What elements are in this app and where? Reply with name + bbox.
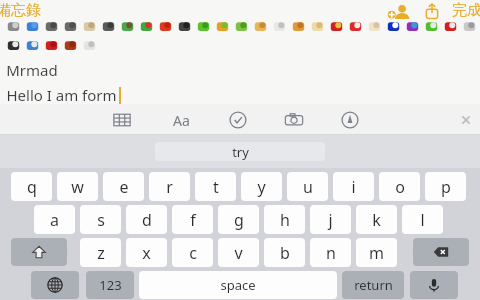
staticText: p <box>441 176 451 198</box>
button[interactable]: y <box>241 172 282 201</box>
button[interactable]: Markup <box>338 108 362 132</box>
button[interactable]: r <box>149 172 190 201</box>
staticText: m <box>369 242 384 264</box>
button[interactable]: e <box>103 172 144 201</box>
staticText: l <box>420 209 425 231</box>
staticText: z <box>97 242 105 264</box>
button[interactable]: z <box>80 238 121 267</box>
staticText: n <box>326 242 336 264</box>
button[interactable]: Camera <box>282 108 306 132</box>
button[interactable]: 123 <box>86 271 134 299</box>
button[interactable]: try <box>155 142 325 161</box>
staticText: x <box>142 242 151 264</box>
button[interactable]: Table <box>110 108 134 132</box>
staticText: 備忘錄 <box>0 1 41 20</box>
staticText: k <box>372 209 381 231</box>
button[interactable]: c <box>172 238 213 267</box>
button[interactable]: Keyboard language <box>31 271 79 299</box>
button[interactable]: Backspace <box>413 238 469 266</box>
staticText: space <box>220 276 256 294</box>
button[interactable]: f <box>172 205 213 234</box>
staticText: y <box>257 176 266 198</box>
button[interactable]: Checklist <box>226 108 250 132</box>
staticText: c <box>189 242 197 264</box>
button[interactable]: i <box>333 172 374 201</box>
button[interactable]: a <box>34 205 75 234</box>
staticText: b <box>280 242 290 264</box>
button[interactable]: Shift <box>11 238 67 266</box>
button[interactable]: o <box>379 172 420 201</box>
button[interactable]: t <box>195 172 236 201</box>
staticText: 123 <box>99 276 122 294</box>
button[interactable]: g <box>218 205 259 234</box>
button[interactable]: j <box>310 205 351 234</box>
button[interactable]: u <box>287 172 328 201</box>
staticText: d <box>142 209 152 231</box>
button[interactable]: q <box>11 172 52 201</box>
staticText: h <box>280 209 290 231</box>
button[interactable]: h <box>264 205 305 234</box>
staticText: return <box>354 276 393 294</box>
staticText: q <box>27 176 37 198</box>
staticText: Hello I am form <box>6 85 117 105</box>
button[interactable]: Aa <box>168 109 194 131</box>
button[interactable]: space <box>139 271 337 299</box>
button[interactable]: return <box>342 271 404 299</box>
staticText: s <box>97 209 105 231</box>
button[interactable]: Share <box>422 2 442 20</box>
button[interactable]: x <box>126 238 167 267</box>
button[interactable]: p <box>425 172 466 201</box>
staticText: try <box>232 143 249 161</box>
button[interactable]: l <box>402 205 443 234</box>
button[interactable]: s <box>80 205 121 234</box>
button[interactable]: w <box>57 172 98 201</box>
staticText: r <box>166 176 173 198</box>
staticText: Aa <box>173 111 190 130</box>
button[interactable]: Dictation <box>410 271 458 299</box>
staticText: v <box>234 242 243 264</box>
button[interactable]: Close <box>456 110 476 130</box>
staticText: t <box>213 176 219 198</box>
button[interactable]: Add people <box>386 2 412 20</box>
staticText: 完成 <box>452 1 480 20</box>
staticText: u <box>303 176 313 198</box>
staticText: Mrmad <box>6 60 58 80</box>
staticText: o <box>395 176 405 198</box>
button[interactable]: b <box>264 238 305 267</box>
button[interactable]: v <box>218 238 259 267</box>
button[interactable]: m <box>356 238 397 267</box>
button[interactable]: 完成 <box>450 1 480 20</box>
button[interactable]: k <box>356 205 397 234</box>
button[interactable]: d <box>126 205 167 234</box>
staticText: f <box>190 209 196 231</box>
button[interactable]: n <box>310 238 351 267</box>
staticText: g <box>234 209 244 231</box>
staticText: e <box>119 176 129 198</box>
staticText: a <box>50 209 59 231</box>
staticText: i <box>351 176 356 198</box>
staticText: j <box>328 209 333 231</box>
staticText: w <box>71 176 84 198</box>
